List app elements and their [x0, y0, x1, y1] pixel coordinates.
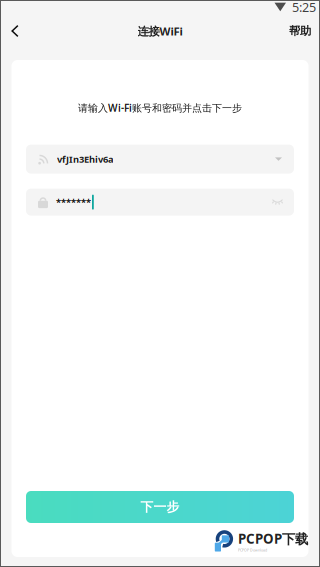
staticText: 帮助: [289, 24, 311, 38]
staticText: 5:25: [292, 0, 316, 16]
staticText: 请输入Wi-Fi账号和密码并点击下一步: [78, 101, 242, 115]
button[interactable]: vfJIn3Ehiv6a: [26, 145, 294, 174]
staticText: 连接WiFi: [137, 23, 182, 39]
staticText: PCPOP Download: [238, 548, 267, 552]
staticText: *******: [56, 196, 91, 208]
staticText: vfJIn3Ehiv6a: [57, 153, 114, 165]
button[interactable]: *******: [26, 189, 294, 216]
button[interactable]: 帮助: [267, 14, 320, 48]
staticText: 下一步: [140, 499, 179, 515]
button[interactable]: 下一步: [26, 491, 294, 523]
button[interactable]: Back: [0, 14, 30, 48]
staticText: PCPOP下载: [238, 529, 308, 548]
